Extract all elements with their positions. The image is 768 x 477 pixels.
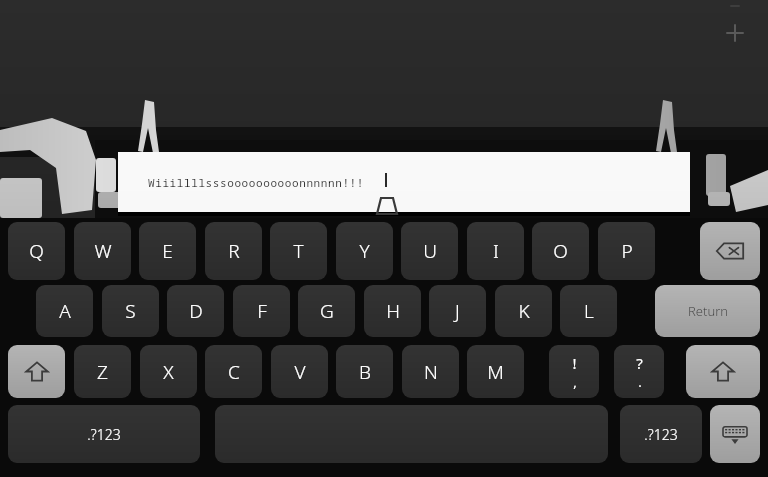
staticText: C	[228, 359, 240, 385]
button[interactable]: F	[233, 285, 290, 337]
staticText: N	[424, 359, 438, 385]
staticText: A	[59, 298, 71, 324]
staticText: E	[162, 238, 173, 264]
button[interactable]: N	[402, 345, 459, 398]
staticText: ,	[573, 373, 577, 391]
button[interactable]: O	[532, 222, 589, 280]
staticText: P	[621, 238, 633, 264]
staticText: U	[423, 238, 437, 264]
staticText: F	[257, 298, 267, 324]
button[interactable]: Return	[655, 285, 760, 337]
staticText: Return	[688, 302, 728, 320]
button[interactable]: Space	[215, 405, 608, 463]
staticText: .?123	[644, 425, 678, 444]
button[interactable]: .?123	[8, 405, 200, 463]
button[interactable]: D	[167, 285, 224, 337]
button[interactable]: M	[467, 345, 524, 398]
button[interactable]: .?123	[620, 405, 702, 463]
button[interactable]: E	[139, 222, 196, 280]
staticText: K	[518, 298, 530, 324]
staticText: .?123	[87, 425, 121, 444]
button[interactable]: Z	[74, 345, 131, 398]
button[interactable]: K	[495, 285, 552, 337]
button[interactable]: B	[336, 345, 393, 398]
button[interactable]: W	[74, 222, 131, 280]
staticText: R	[228, 238, 240, 264]
button[interactable]: J	[429, 285, 486, 337]
staticText: M	[487, 359, 504, 385]
button[interactable]: R	[205, 222, 262, 280]
staticText: V	[294, 359, 306, 385]
button[interactable]: Hide keyboard	[710, 405, 760, 463]
button[interactable]: Y	[336, 222, 393, 280]
button[interactable]: V	[271, 345, 328, 398]
button[interactable]: X	[140, 345, 197, 398]
button[interactable]: C	[205, 345, 262, 398]
staticText: X	[163, 359, 174, 385]
staticText: B	[359, 359, 371, 385]
staticText: .	[638, 373, 642, 391]
staticText: !	[572, 353, 577, 373]
staticText: L	[584, 298, 594, 324]
staticText: S	[125, 298, 136, 324]
button[interactable]: !	[549, 345, 599, 398]
button[interactable]: U	[401, 222, 458, 280]
button[interactable]: Backspace	[700, 222, 760, 280]
staticText: J	[455, 298, 460, 324]
staticText: Q	[29, 238, 44, 264]
staticText: Z	[97, 359, 108, 385]
staticText: D	[189, 298, 203, 324]
button[interactable]: Shift	[686, 345, 760, 398]
staticText: W	[94, 238, 112, 264]
button[interactable]: T	[270, 222, 327, 280]
staticText: ?	[636, 353, 643, 373]
button[interactable]: S	[102, 285, 159, 337]
staticText: G	[320, 298, 334, 324]
button[interactable]: Shift	[8, 345, 65, 398]
button[interactable]: I	[467, 222, 524, 280]
staticText: O	[553, 238, 568, 264]
button[interactable]: G	[298, 285, 355, 337]
button[interactable]: Q	[8, 222, 65, 280]
staticText: Wiiillllsssoooooooooonnnnnn!!!	[148, 175, 364, 190]
button[interactable]: A	[36, 285, 93, 337]
staticText: H	[386, 298, 400, 324]
button[interactable]: P	[598, 222, 655, 280]
staticText: I	[493, 238, 499, 264]
button[interactable]: H	[364, 285, 421, 337]
button[interactable]: ?	[614, 345, 664, 398]
staticText: Y	[359, 238, 370, 264]
staticText: T	[293, 238, 304, 264]
button[interactable]: L	[560, 285, 617, 337]
